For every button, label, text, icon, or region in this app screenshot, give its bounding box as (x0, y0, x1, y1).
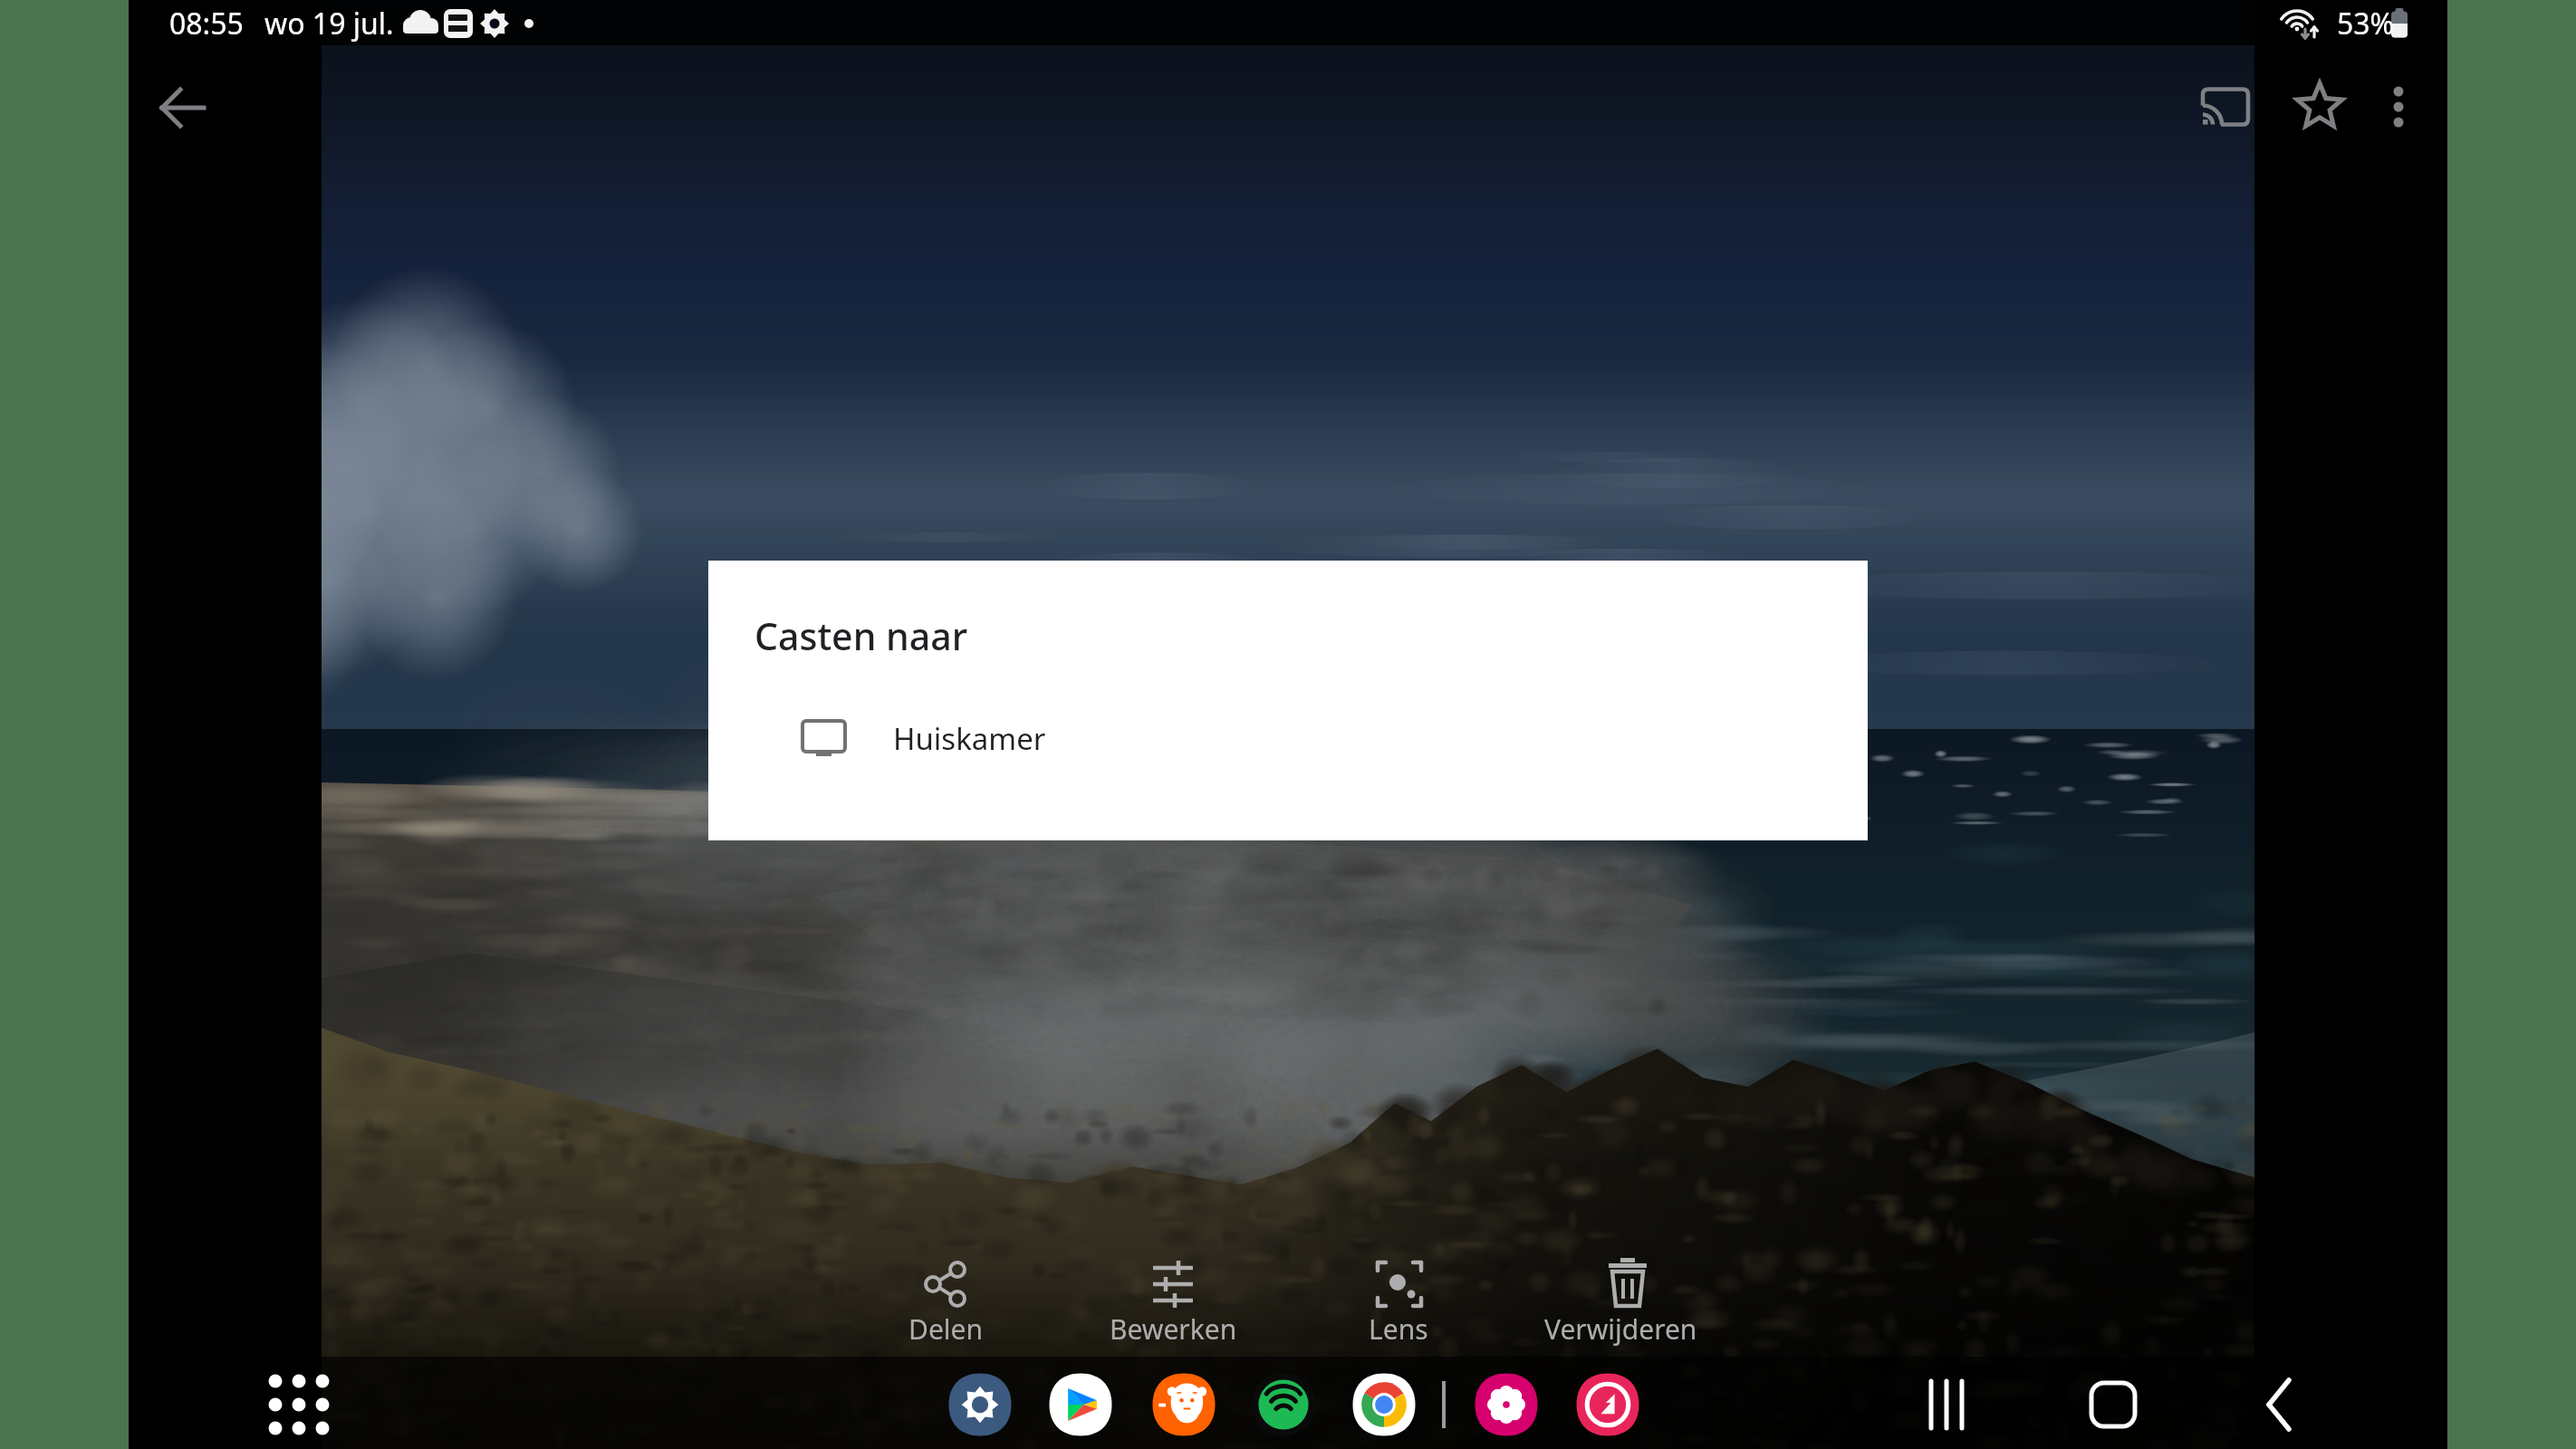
button[interactable]: Play Store (1044, 1368, 1117, 1441)
button[interactable]: Favorite (2276, 63, 2363, 150)
staticText: 53% (2337, 4, 2395, 43)
staticText: Delen (908, 1310, 984, 1348)
button[interactable] (1537, 1248, 1718, 1353)
button[interactable]: Recents (1910, 1368, 1983, 1441)
staticText: 08:55 (169, 4, 244, 43)
button[interactable] (1309, 1248, 1490, 1353)
button[interactable]: Cast (2182, 63, 2269, 150)
button[interactable]: More options (2355, 63, 2442, 150)
staticText: Bewerken (1110, 1310, 1237, 1348)
staticText: Casten naar (755, 610, 967, 661)
button[interactable]: Spotify (1247, 1368, 1320, 1441)
button[interactable]: ING (1148, 1368, 1220, 1441)
button[interactable]: Huiskamer (708, 692, 1868, 773)
button[interactable]: Photos (1470, 1368, 1543, 1441)
button[interactable] (1082, 1248, 1264, 1353)
button[interactable]: Back (139, 64, 226, 151)
button[interactable]: Chrome (1348, 1368, 1420, 1441)
staticText: Huiskamer (893, 718, 1046, 759)
staticText: wo 19 jul. (264, 4, 394, 43)
button[interactable]: Settings (944, 1368, 1016, 1441)
button[interactable]: Back (2244, 1368, 2316, 1441)
button[interactable] (855, 1248, 1036, 1353)
staticText: Lens (1369, 1310, 1428, 1348)
button[interactable]: All apps (263, 1368, 335, 1441)
button[interactable]: Home (2077, 1368, 2149, 1441)
button[interactable]: App (1572, 1368, 1644, 1441)
staticText: Verwijderen (1544, 1310, 1697, 1348)
